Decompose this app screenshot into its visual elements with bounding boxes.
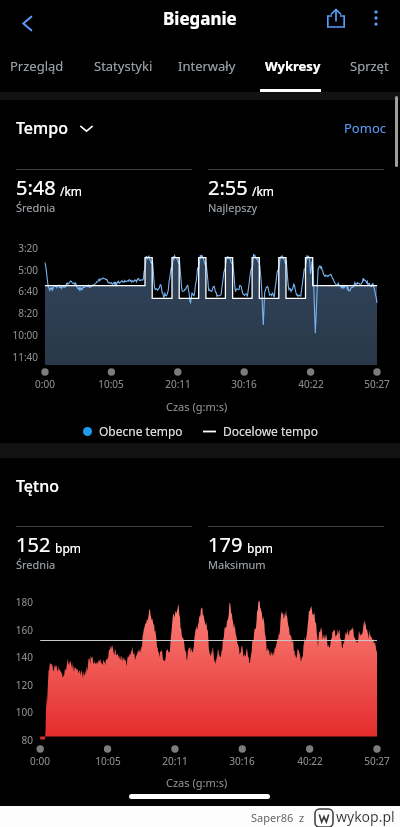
staticText: Wykresy — [265, 57, 321, 75]
staticText: bpm — [247, 540, 273, 556]
staticText: Tętno — [16, 475, 59, 497]
staticText: Czas (g:m:s) — [166, 775, 228, 790]
staticText: Przegląd — [10, 57, 64, 75]
staticText: Bieganie — [163, 7, 237, 30]
staticText: 80 — [0, 733, 33, 747]
staticText: 50:27 — [357, 377, 397, 391]
staticText: 2:55 — [208, 174, 248, 201]
staticText: 50:27 — [357, 754, 397, 768]
staticText: Obecne tempo — [99, 423, 183, 439]
button[interactable]: Tempo — [16, 117, 93, 139]
staticText: 3:20 — [0, 241, 38, 255]
button[interactable]: More options — [356, 0, 396, 38]
staticText: 0:00 — [25, 377, 65, 391]
button[interactable]: Back — [9, 5, 45, 41]
staticText: Sprzęt — [350, 57, 389, 75]
staticText: 20:11 — [155, 754, 195, 768]
staticText: 160 — [0, 623, 33, 637]
staticText: 179 — [208, 531, 243, 558]
staticText: Średnia — [16, 557, 56, 572]
button[interactable]: Interwały — [163, 46, 251, 92]
staticText: wykop.pl — [336, 807, 395, 826]
staticText: 10:05 — [91, 377, 131, 391]
staticText: 20:11 — [158, 377, 198, 391]
staticText: 10:00 — [0, 328, 38, 342]
button[interactable]: Pomoc — [344, 119, 386, 137]
staticText: 40:22 — [291, 377, 331, 391]
staticText: Docelowe tempo — [223, 423, 318, 439]
button[interactable]: Sprzęt — [335, 46, 400, 92]
staticText: Saper86 — [251, 810, 294, 825]
button[interactable]: Wykresy — [253, 46, 333, 92]
staticText: 5:48 — [16, 174, 56, 201]
staticText: Czas (g:m:s) — [166, 399, 228, 414]
staticText: 10:05 — [88, 754, 128, 768]
staticText: 30:16 — [222, 754, 262, 768]
staticText: Statystyki — [94, 57, 153, 75]
button[interactable]: Share — [316, 0, 356, 38]
staticText: /km — [60, 183, 83, 199]
staticText: Najlepszy — [208, 200, 258, 215]
staticText: 152 — [16, 531, 51, 558]
staticText: Tempo — [16, 117, 68, 139]
staticText: z — [299, 810, 305, 825]
staticText: 120 — [0, 678, 33, 692]
staticText: 11:40 — [0, 350, 38, 364]
staticText: /km — [252, 183, 275, 199]
button[interactable]: Statystyki — [81, 46, 165, 92]
staticText: Interwały — [178, 57, 236, 75]
staticText: 40:22 — [290, 754, 330, 768]
staticText: 140 — [0, 650, 33, 664]
staticText: 6:40 — [0, 284, 38, 298]
staticText: bpm — [55, 540, 81, 556]
staticText: Średnia — [16, 200, 56, 215]
staticText: 8:20 — [0, 306, 38, 320]
staticText: 0:00 — [20, 754, 60, 768]
staticText: Maksimum — [208, 557, 266, 572]
staticText: 5:00 — [0, 263, 38, 277]
button[interactable]: Przegląd — [1, 46, 73, 92]
staticText: 30:16 — [224, 377, 264, 391]
staticText: 100 — [0, 705, 33, 719]
staticText: 180 — [0, 595, 33, 609]
